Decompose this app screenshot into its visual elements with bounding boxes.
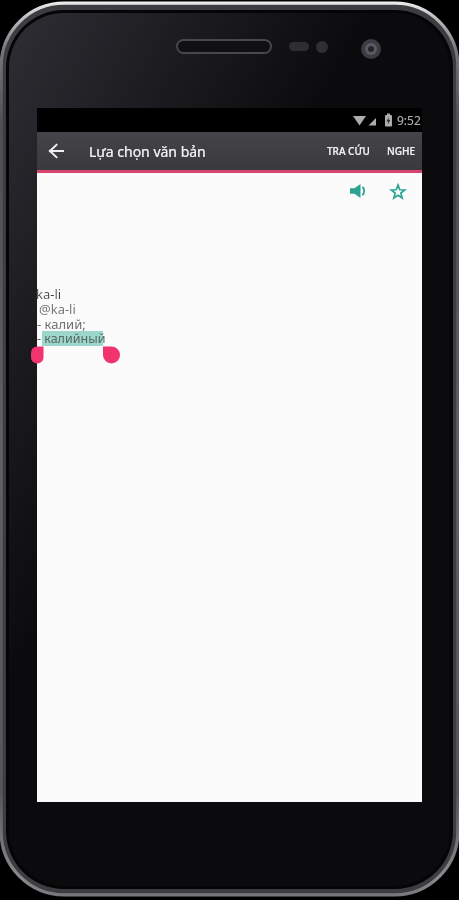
button[interactable]: TRA CỨU — [327, 132, 370, 170]
staticText: - калийный — [37, 330, 106, 347]
staticText: - калий; — [37, 315, 86, 333]
button[interactable] — [383, 176, 413, 206]
staticText: Lựa chọn văn bản — [89, 142, 206, 161]
button[interactable] — [37, 132, 75, 170]
staticText: TRA CỨU — [327, 144, 370, 158]
button[interactable]: NGHE — [387, 132, 416, 170]
staticText: ka-li — [36, 285, 62, 303]
staticText: NGHE — [387, 144, 416, 158]
staticText: 9:52 — [397, 112, 421, 128]
staticText: @ka-li — [39, 300, 76, 318]
button[interactable] — [345, 178, 371, 204]
